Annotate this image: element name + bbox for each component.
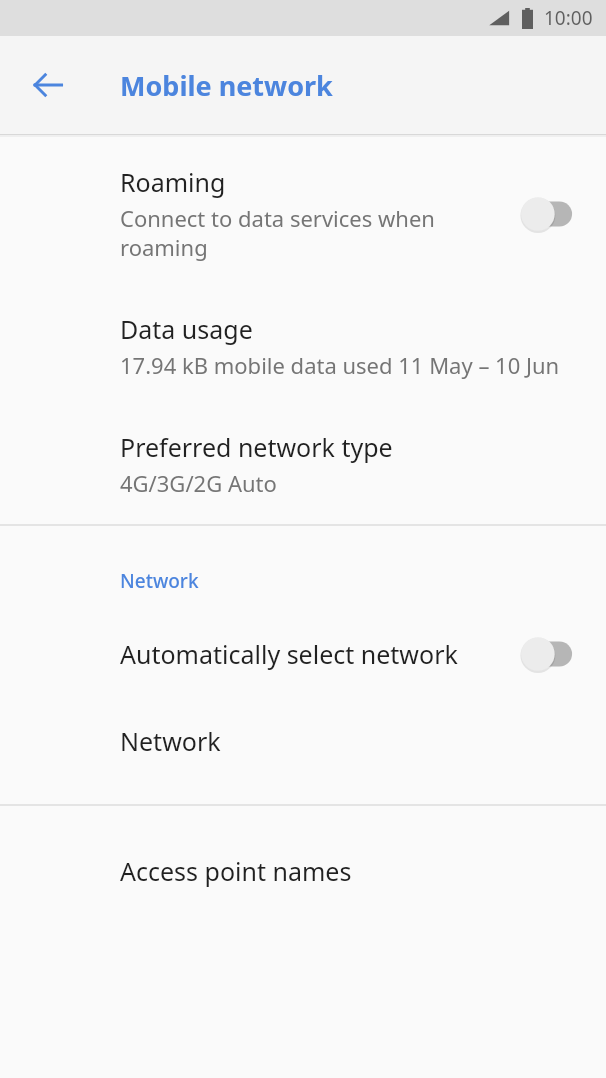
button[interactable]: Back [16,53,80,117]
button[interactable]: Data usage [0,288,606,406]
button[interactable]: Automatically select network [0,608,606,700]
staticText: Connect to data services when roaming [120,203,508,262]
staticText: 10:00 [544,5,593,31]
staticText: 4G/3G/2G Auto [120,468,277,498]
staticText: Data usage [120,312,253,346]
staticText: Automatically select network [120,637,458,671]
staticText: Preferred network type [120,430,393,464]
button[interactable]: Toggle [520,194,576,234]
button[interactable]: Network [0,700,606,804]
button[interactable]: Preferred network type [0,406,606,524]
staticText: 17.94 kB mobile data used 11 May – 10 Ju… [120,350,560,380]
staticText: Network [120,724,221,758]
button[interactable]: Roaming [0,137,606,288]
staticText: Network [120,568,199,594]
button[interactable]: Toggle [520,634,576,674]
staticText: Mobile network [120,67,333,104]
staticText: Access point names [120,854,352,888]
staticText: Roaming [120,165,226,199]
button[interactable]: Access point names [0,806,606,928]
